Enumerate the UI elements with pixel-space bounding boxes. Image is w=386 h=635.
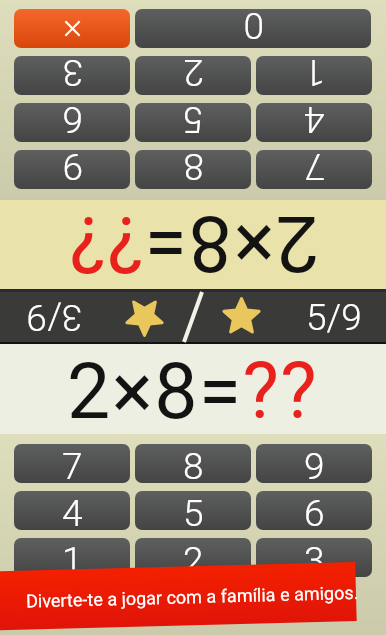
staticText: 2 [183, 56, 204, 94]
button[interactable]: 9 [256, 444, 372, 483]
button[interactable]: 0 [135, 9, 371, 48]
staticText: 1 [304, 56, 325, 94]
button[interactable]: 2 [135, 56, 251, 95]
button[interactable]: 5 [135, 103, 251, 142]
button[interactable]: 3 [256, 538, 372, 577]
staticText: 9 [62, 150, 83, 188]
staticText: 0 [243, 9, 264, 47]
staticText: 5 [183, 492, 204, 530]
button[interactable]: 6 [14, 103, 130, 142]
button[interactable]: Clear [14, 9, 130, 48]
staticText: Diverte-te a jogar com a família e amigo… [26, 582, 359, 612]
staticText: 8 [183, 150, 204, 188]
staticText: 2×8=?? [67, 347, 319, 437]
staticText: 6 [62, 103, 83, 141]
staticText: 3/9 [26, 296, 82, 339]
button[interactable]: 6 [256, 491, 372, 530]
staticText: 1 [62, 539, 83, 577]
button[interactable]: 4 [256, 103, 372, 142]
staticText: 3 [62, 56, 83, 94]
button[interactable]: 3 [14, 56, 130, 95]
staticText: 3 [304, 539, 325, 577]
button[interactable]: 4 [14, 491, 130, 530]
button[interactable]: 2 [135, 538, 251, 577]
staticText: 2 [183, 539, 204, 577]
button[interactable]: 9 [14, 150, 130, 189]
staticText: 6 [304, 492, 325, 530]
button[interactable]: 8 [135, 150, 251, 189]
staticText: 9 [304, 445, 325, 483]
button[interactable]: 1 [256, 56, 372, 95]
button[interactable]: 1 [14, 538, 130, 577]
staticText: 7 [62, 445, 83, 483]
button[interactable]: Diverte-te a jogar com a família e amigo… [0, 562, 357, 631]
button[interactable]: 7 [256, 150, 372, 189]
button[interactable]: 7 [14, 444, 130, 483]
staticText: 5 [183, 103, 204, 141]
button[interactable]: 8 [135, 444, 251, 483]
staticText: 2×8=?? [67, 199, 319, 288]
staticText: 7 [304, 150, 325, 188]
staticText: 5/9 [306, 296, 362, 339]
staticText: 8 [183, 445, 204, 483]
button[interactable]: 5 [135, 491, 251, 530]
staticText: 4 [62, 492, 83, 530]
staticText: 4 [304, 103, 325, 141]
